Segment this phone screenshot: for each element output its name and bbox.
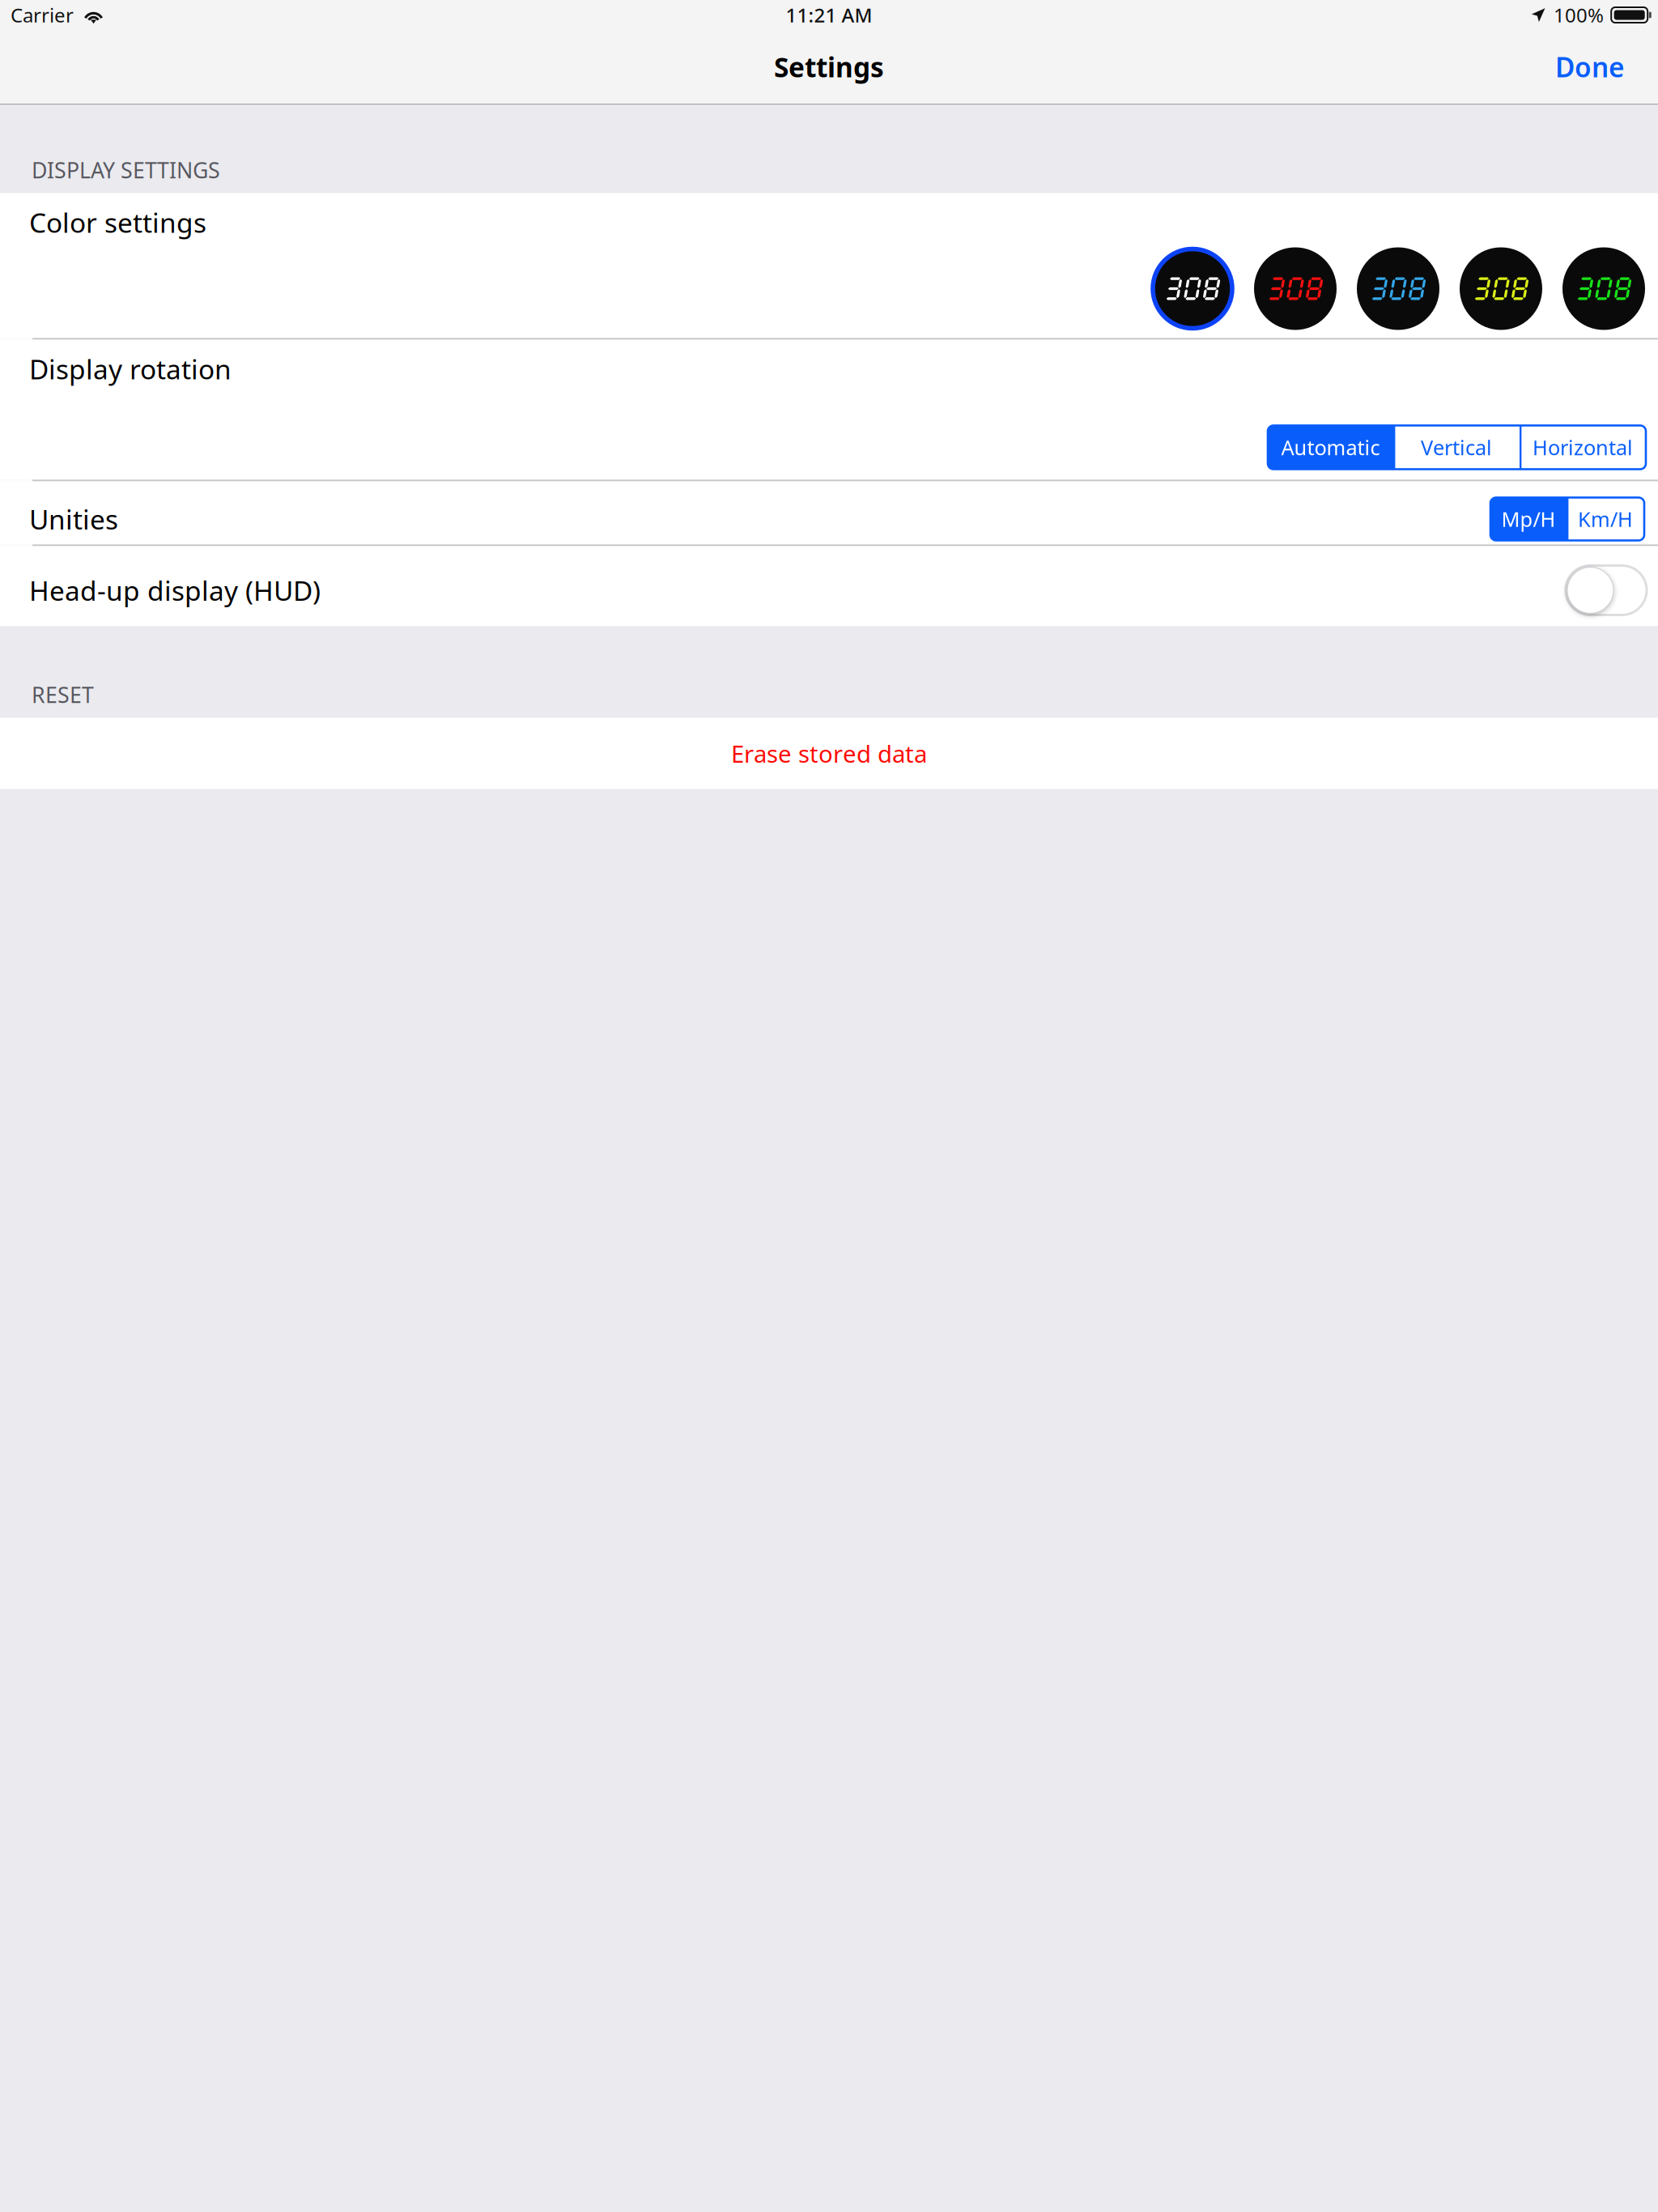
staticText: Head-up display (HUD): [29, 572, 321, 608]
staticText: Horizontal: [1533, 434, 1633, 461]
button[interactable]: Vertical: [1393, 425, 1520, 469]
staticText: Mp/H: [1501, 505, 1556, 533]
staticText: Automatic: [1281, 434, 1380, 461]
staticText: Settings: [774, 49, 884, 85]
staticText: Vertical: [1421, 434, 1492, 461]
button[interactable]: Display colour: [1460, 247, 1542, 330]
staticText: RESET: [32, 680, 94, 709]
staticText: 11:21 AM: [786, 2, 872, 28]
staticText: Unities: [29, 501, 118, 537]
button[interactable]: Horizontal: [1520, 425, 1646, 469]
staticText: Display rotation: [29, 351, 232, 387]
button[interactable]: Display colour: [1151, 247, 1234, 330]
button[interactable]: Km/H: [1567, 498, 1644, 540]
button[interactable]: Done: [1531, 30, 1658, 104]
staticText: Color settings: [29, 204, 206, 240]
staticText: 100%: [1554, 2, 1604, 28]
staticText: Km/H: [1578, 505, 1633, 533]
button[interactable]: Mp/H: [1490, 498, 1567, 540]
staticText: Carrier: [11, 2, 74, 28]
button[interactable]: Head-up display, off: [1566, 566, 1647, 615]
staticText: DISPLAY SETTINGS: [32, 156, 220, 184]
button[interactable]: Display colour: [1254, 247, 1337, 330]
button[interactable]: Display colour: [1562, 247, 1645, 330]
button[interactable]: Erase stored data: [0, 718, 1658, 789]
button[interactable]: Automatic: [1268, 425, 1393, 469]
staticText: Done: [1555, 49, 1625, 85]
staticText: Erase stored data: [731, 738, 927, 769]
button[interactable]: Display colour: [1357, 247, 1439, 330]
